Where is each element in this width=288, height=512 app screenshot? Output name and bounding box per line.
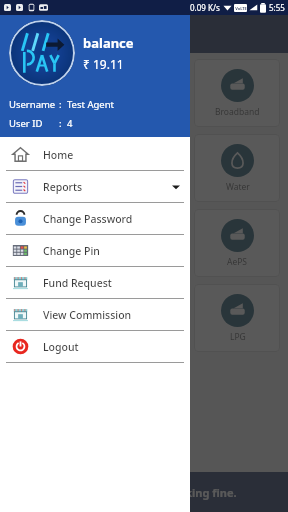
staticText: Loan [135,256,155,268]
button[interactable]: Landline [8,284,94,352]
button[interactable]: Home [0,139,190,170]
staticText: Fund Request [43,276,112,290]
staticText: ₹ 19.11 [83,56,124,72]
staticText: : [59,98,62,111]
staticText: View Commission [43,308,132,322]
button[interactable]: Loan [101,209,187,277]
staticText: AePS [227,256,248,268]
other: Profile avatar [9,20,75,86]
staticText: LPG [230,331,246,343]
staticText: User ID [9,117,59,130]
button[interactable]: DTH [101,59,187,127]
button[interactable]: Change Password [0,203,190,234]
button[interactable]: Logout [0,331,190,362]
staticText: 4 [67,117,73,130]
staticText: Reports [43,180,83,194]
button[interactable]: View Commission [0,299,190,330]
button[interactable]: Water [194,134,280,202]
staticText: balance [83,34,134,52]
staticText: 0.09 K/s [190,2,220,13]
button[interactable]: Change Pin [0,235,190,266]
button[interactable]: Mobile [8,59,94,127]
button[interactable]: AePS [194,209,280,277]
staticText: Mobile [38,106,66,118]
staticText: Insurance [31,256,71,268]
button[interactable]: Reports [0,171,190,202]
staticText: 5:55 [269,2,285,13]
staticText: Logout [43,340,79,354]
staticText: Water [226,181,250,193]
staticText: Home [43,148,74,162]
staticText: : [59,117,62,130]
staticText: Test Agent [67,98,114,111]
staticText: Change Pin [43,244,100,258]
button[interactable]: Electric [8,134,94,202]
staticText: Everything is working fine. [90,485,237,500]
staticText: Username [9,98,59,111]
button[interactable]: Insurance [8,209,94,277]
staticText: Broadband [215,106,260,118]
button[interactable]: Fund Request [0,267,190,298]
button[interactable]: Fastag [101,284,187,352]
button[interactable]: Gas [101,134,187,202]
button[interactable]: Broadband [194,59,280,127]
staticText: Electric [37,181,66,193]
staticText: VoLTE [235,6,247,11]
button[interactable]: LPG [194,284,280,352]
staticText: Change Password [43,212,133,226]
